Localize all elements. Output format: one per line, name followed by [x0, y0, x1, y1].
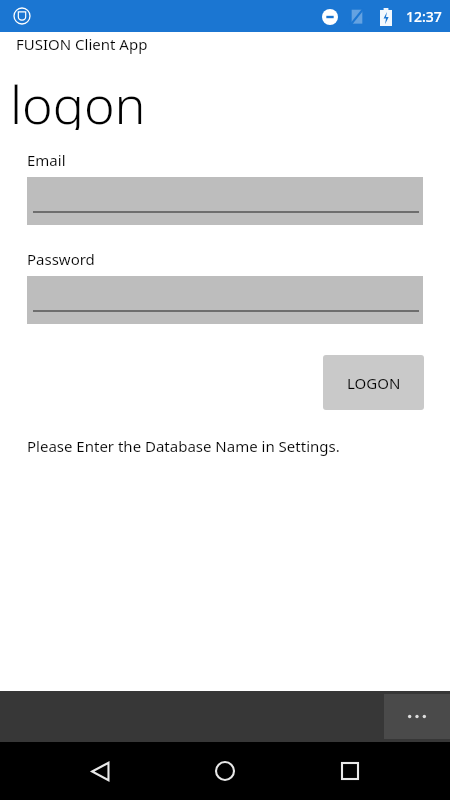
- staticText: logon: [10, 68, 146, 130]
- staticText: LOGON: [347, 373, 401, 393]
- staticText: Please Enter the Database Name in Settin…: [27, 436, 340, 456]
- button[interactable]: [27, 276, 423, 324]
- staticText: 12:37: [406, 7, 442, 26]
- staticText: Password: [27, 249, 95, 269]
- staticText: FUSION Client App: [16, 34, 148, 54]
- button[interactable]: More options: [384, 694, 450, 739]
- button[interactable]: Back: [79, 750, 121, 792]
- staticText: Email: [27, 150, 66, 170]
- button[interactable]: Recent apps: [329, 750, 371, 792]
- button[interactable]: LOGON: [323, 355, 424, 410]
- button[interactable]: Home: [204, 750, 246, 792]
- button[interactable]: [27, 177, 423, 225]
